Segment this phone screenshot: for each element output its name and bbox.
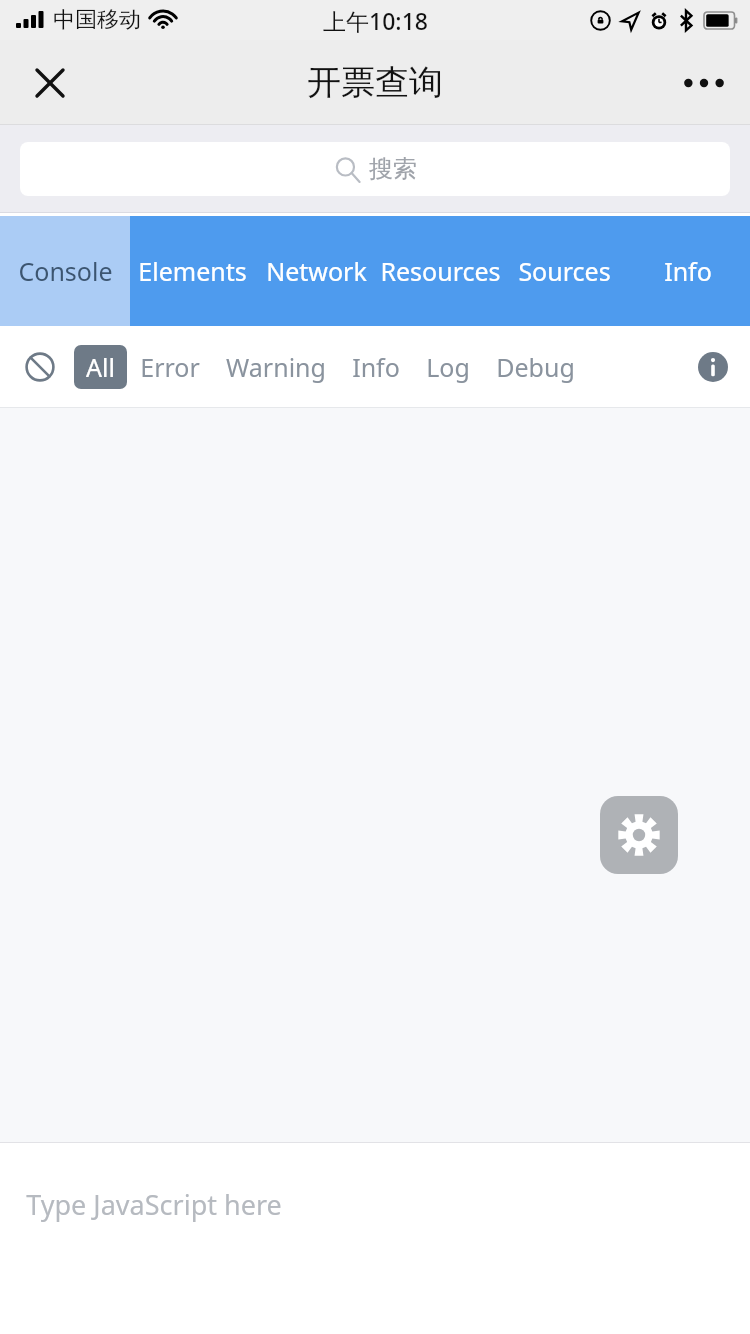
button[interactable]: Sources — [502, 216, 626, 326]
button[interactable]: Network — [254, 216, 378, 326]
staticText: 所属板块 — [38, 376, 134, 406]
staticText: Elements — [138, 254, 247, 288]
button[interactable]: All — [74, 345, 127, 389]
button[interactable]: Resources — [378, 216, 502, 326]
staticText: Network — [266, 254, 367, 288]
button[interactable]: Warning — [213, 345, 339, 389]
button[interactable]: Close — [18, 51, 82, 115]
staticText: Info — [664, 254, 712, 288]
button[interactable]: Log — [413, 345, 483, 389]
staticText: 公司名称 — [250, 376, 346, 406]
staticText: Warning — [226, 350, 326, 384]
button[interactable]: Type JavaScript here — [0, 1142, 750, 1334]
button[interactable]: Elements — [130, 216, 254, 326]
staticText: Log — [426, 350, 470, 384]
staticText: Resources — [380, 254, 501, 288]
staticText: Debug — [496, 350, 575, 384]
staticText: 上午10:18 — [323, 5, 428, 36]
staticText: Info — [352, 350, 400, 384]
button[interactable]: Console — [0, 216, 130, 326]
button[interactable]: Error — [127, 345, 213, 389]
button[interactable]: Debug — [483, 345, 588, 389]
staticText: All — [86, 350, 115, 384]
staticText: Sources — [518, 254, 611, 288]
button[interactable]: More options — [672, 51, 736, 115]
staticText: 开票查询 — [307, 61, 443, 104]
button[interactable]: 搜索 — [20, 142, 730, 196]
staticText: 搜索 — [369, 154, 417, 184]
staticText: Console — [18, 254, 113, 288]
button[interactable]: Info — [688, 342, 738, 392]
staticText: 开票信息 — [321, 251, 429, 285]
button[interactable]: Settings — [600, 796, 678, 874]
button[interactable]: Clear console — [16, 343, 64, 391]
staticText: 中国移动 — [53, 6, 141, 34]
staticText: Type JavaScript here — [26, 1186, 282, 1223]
staticText: Error — [140, 350, 200, 384]
button[interactable]: Info — [339, 345, 413, 389]
button[interactable]: Info — [626, 216, 750, 326]
